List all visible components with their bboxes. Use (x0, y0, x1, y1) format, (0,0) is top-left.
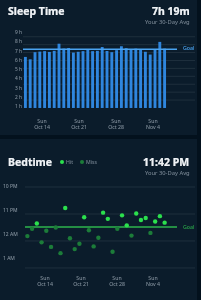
staticText: Miss (86, 158, 98, 165)
staticText: 12 AM (3, 231, 18, 238)
staticText: Sun Oct 28 (109, 274, 125, 288)
staticText: Sun Nov 4 (146, 274, 160, 288)
staticText: Goal (183, 223, 195, 230)
staticText: Sun Nov 4 (146, 117, 160, 131)
staticText: Your 30-Day Avg (145, 18, 190, 26)
staticText: Goal (183, 44, 195, 51)
staticText: 11:42 PM (143, 155, 190, 169)
staticText: 2 h (15, 94, 22, 101)
staticText: 6 h (15, 57, 22, 64)
staticText: 9 h (15, 29, 22, 36)
button[interactable]: Hit (60, 158, 98, 165)
staticText: 5 h (15, 66, 22, 73)
staticText: 7h 19m (152, 4, 190, 18)
staticText: Sun Oct 14 (34, 117, 50, 131)
button[interactable]: Bedtime (0, 139, 197, 300)
staticText: 4 h (15, 75, 22, 82)
staticText: 10 PM (3, 183, 18, 190)
staticText: Sleep Time (8, 4, 65, 18)
button[interactable]: Sleep Time (0, 0, 197, 135)
staticText: 8 h (15, 38, 22, 45)
staticText: Your 30-Day Avg (145, 169, 190, 177)
staticText: Sun Oct 28 (108, 117, 124, 131)
staticText: Sun Oct 21 (73, 274, 89, 288)
staticText: 11 PM (3, 207, 18, 214)
staticText: Hit (66, 158, 74, 165)
staticText: 3 h (15, 85, 22, 92)
staticText: 7 h (15, 48, 22, 55)
staticText: Sun Oct 21 (71, 117, 87, 131)
staticText: Bedtime (8, 155, 53, 169)
staticText: 1 AM (3, 255, 15, 262)
staticText: 1 h (15, 103, 22, 110)
staticText: Sun Oct 14 (37, 274, 53, 288)
